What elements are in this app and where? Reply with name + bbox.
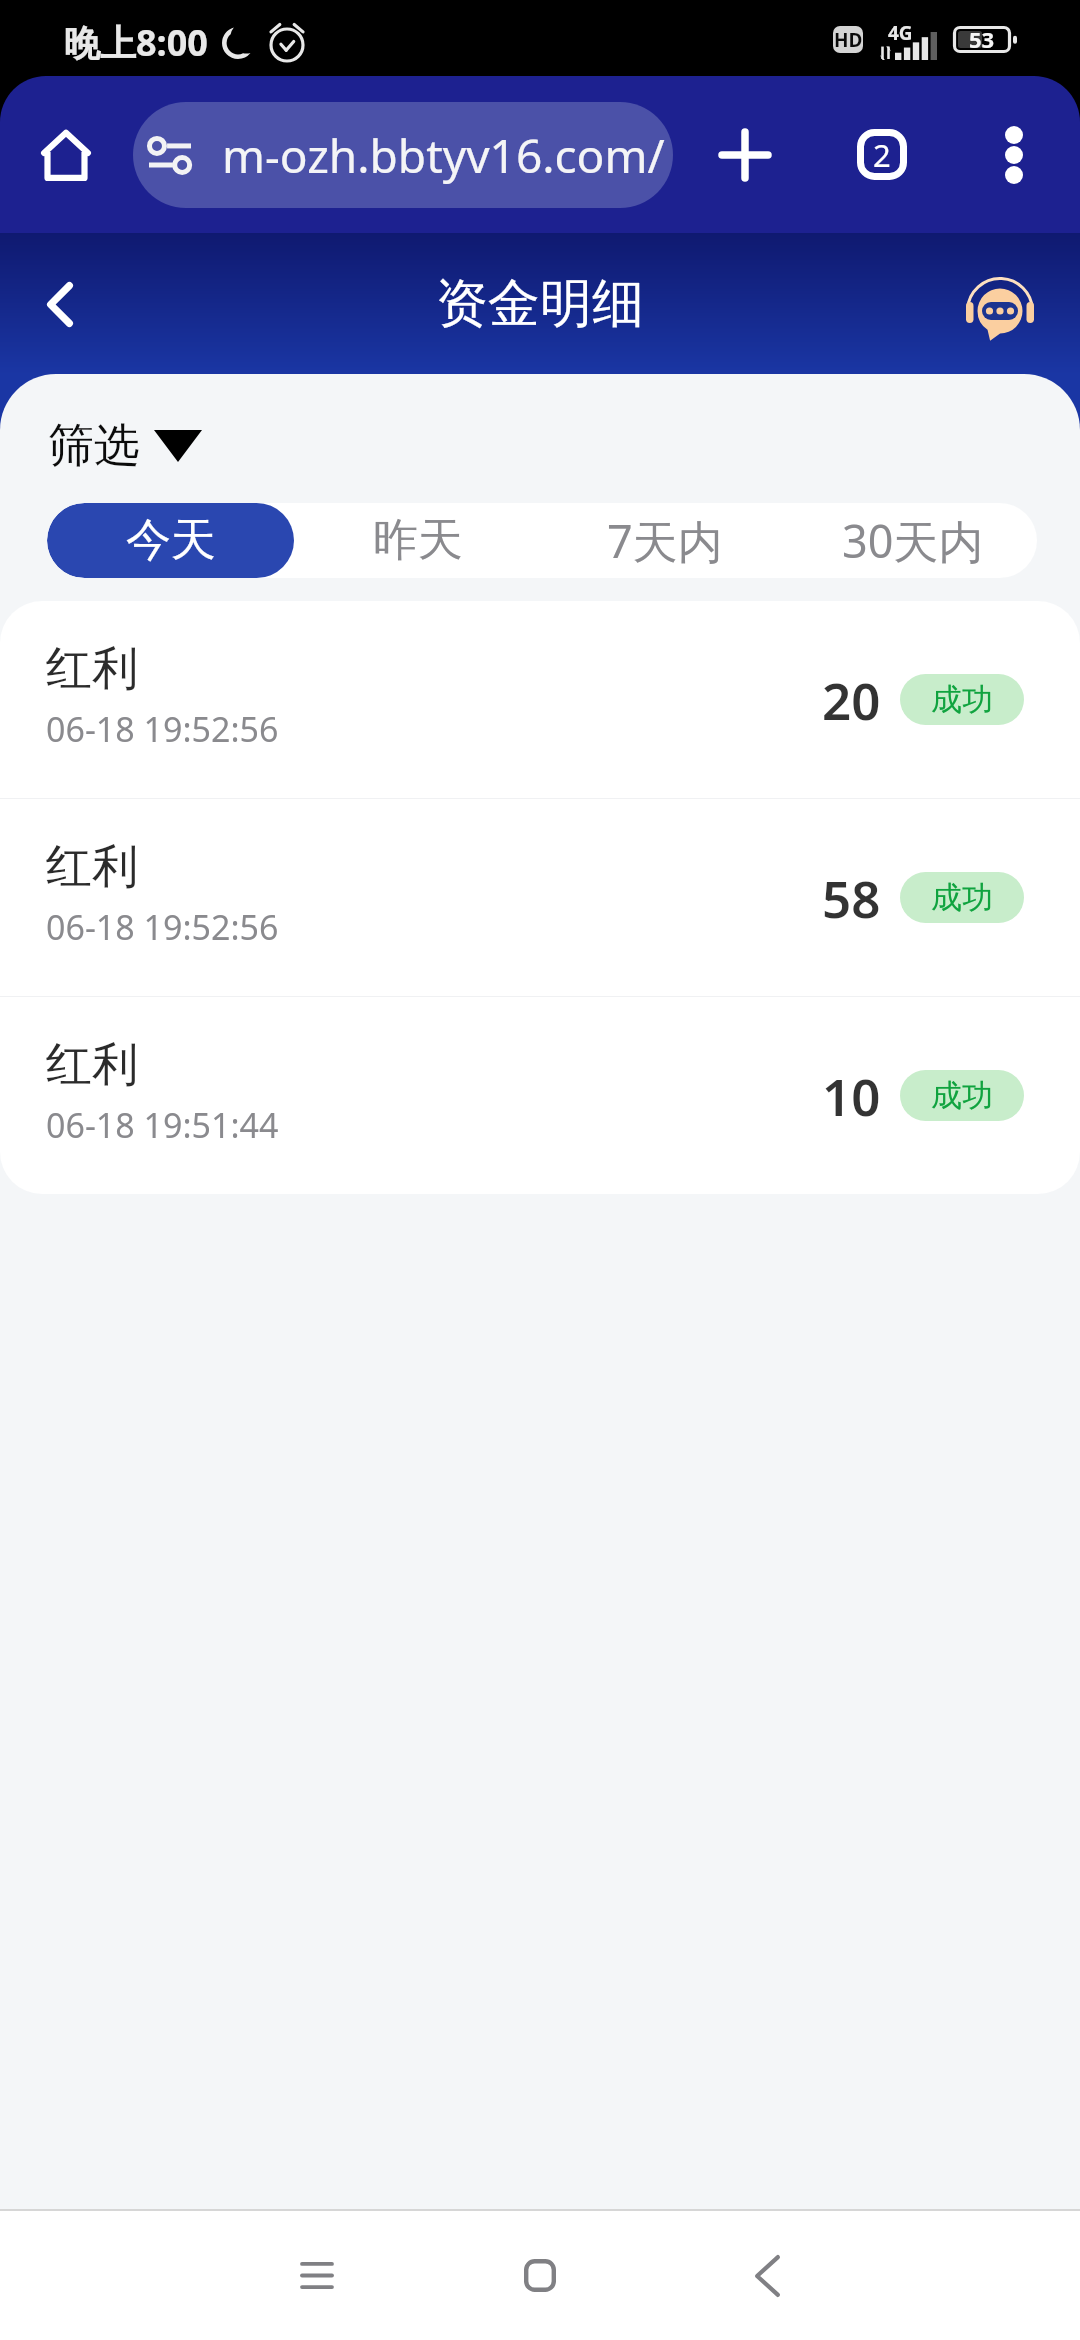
staticText: 成功 (931, 878, 993, 917)
button[interactable]: More options (964, 76, 1064, 233)
button[interactable]: 红利 (0, 601, 1080, 798)
button[interactable]: 今天 (47, 503, 294, 578)
staticText: 53 (969, 24, 995, 54)
button[interactable]: Home (480, 2211, 600, 2340)
staticText: 昨天 (373, 512, 463, 569)
button[interactable]: 30天内 (789, 503, 1037, 578)
button[interactable]: Customer service (958, 267, 1042, 351)
staticText: 晚上8:00 (64, 18, 208, 67)
button[interactable]: 7天内 (541, 503, 789, 578)
staticText: 7天内 (607, 510, 723, 571)
staticText: m-ozh.bbtyv16.com/ (222, 124, 665, 187)
button[interactable]: Back (18, 262, 102, 346)
staticText: 成功 (931, 1076, 993, 1115)
button[interactable]: 昨天 (294, 503, 541, 578)
button[interactable]: 红利 (0, 799, 1080, 996)
staticText: 红利 (46, 1036, 138, 1094)
button[interactable]: 红利 (0, 997, 1080, 1194)
staticText: 20 (822, 665, 881, 734)
staticText: 30天内 (842, 510, 984, 571)
staticText: 成功 (931, 680, 993, 719)
button[interactable]: Menu (257, 2211, 377, 2340)
staticText: 06-18 19:51:44 (46, 1102, 279, 1148)
staticText: 红利 (46, 640, 138, 698)
button[interactable]: m-ozh.bbtyv16.com/ (133, 102, 673, 208)
staticText: 今天 (126, 512, 216, 569)
staticText: 2 (873, 134, 891, 176)
staticText: 06-18 19:52:56 (46, 706, 279, 752)
staticText: 4G (888, 20, 913, 46)
staticText: 06-18 19:52:56 (46, 904, 279, 950)
button[interactable]: Tabs (832, 76, 932, 233)
button[interactable]: Home (16, 76, 116, 233)
button[interactable]: 筛选 (40, 410, 210, 468)
staticText: 10 (822, 1061, 881, 1130)
staticText: 筛选 (48, 417, 140, 475)
staticText: 资金明细 (436, 271, 644, 337)
staticText: HD (834, 27, 863, 53)
button[interactable]: New tab (695, 76, 795, 233)
button[interactable]: Back (707, 2211, 827, 2340)
staticText: 58 (822, 863, 881, 932)
staticText: 红利 (46, 838, 138, 896)
